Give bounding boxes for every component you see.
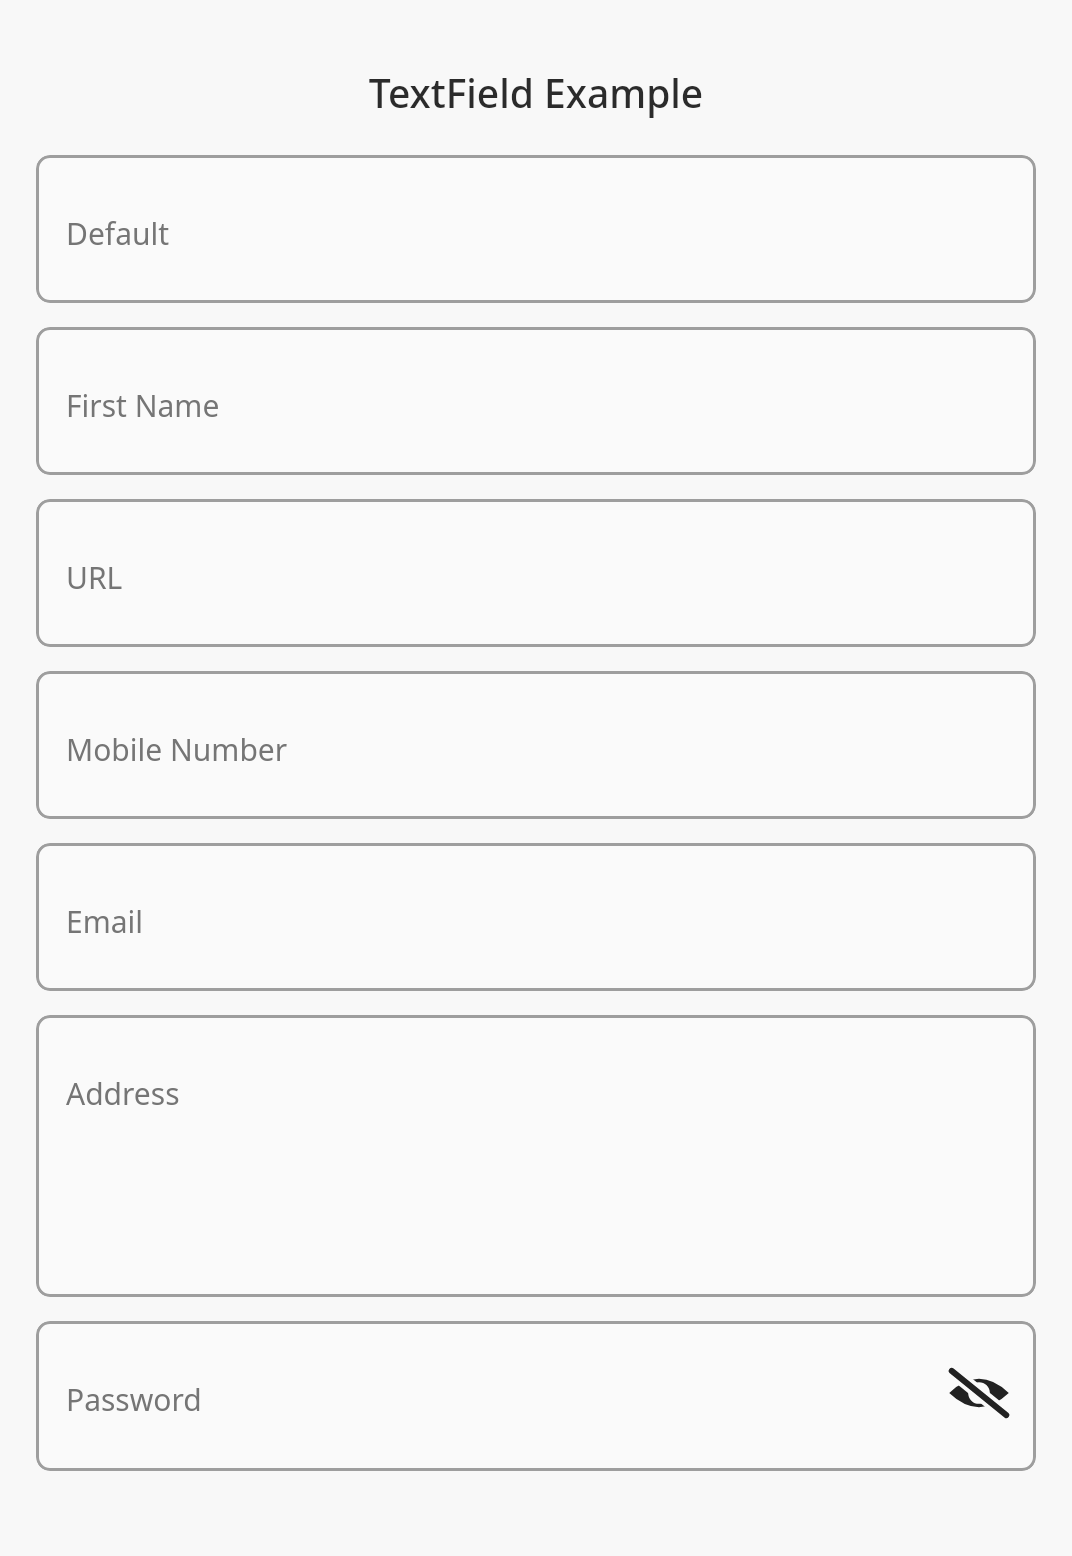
staticText: Password <box>66 1379 202 1420</box>
button[interactable]: Mobile Number <box>36 671 1036 819</box>
button[interactable]: First Name <box>36 327 1036 475</box>
staticText: TextField Example <box>0 66 1072 119</box>
button[interactable]: URL <box>36 499 1036 647</box>
button[interactable]: Address <box>36 1015 1036 1297</box>
staticText: URL <box>66 557 123 598</box>
staticText: First Name <box>66 385 220 426</box>
button[interactable]: Default <box>36 155 1036 303</box>
staticText: Address <box>66 1073 180 1114</box>
button[interactable]: Email <box>36 843 1036 991</box>
staticText: Email <box>66 901 144 942</box>
staticText: Mobile Number <box>66 729 288 770</box>
button[interactable]: Toggle password visibility <box>948 1367 1010 1419</box>
staticText: Default <box>66 213 170 254</box>
button[interactable]: Password <box>36 1321 1036 1471</box>
